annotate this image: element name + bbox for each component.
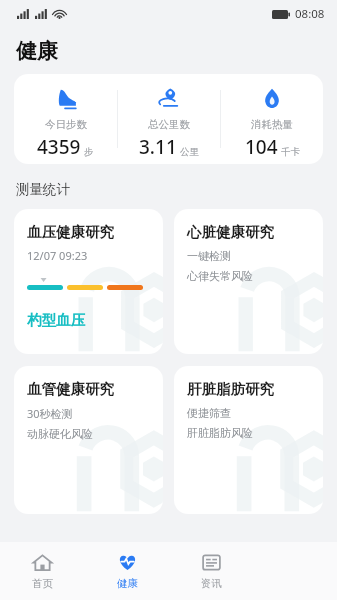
staticText: 3.11: [139, 134, 177, 160]
staticText: 便捷筛查: [187, 406, 231, 420]
other: 资讯: [201, 552, 222, 573]
staticText: 总公里数: [148, 118, 190, 131]
other: 首页: [32, 552, 53, 573]
button[interactable]: 资讯: [169, 542, 253, 600]
staticText: 今日步数: [45, 118, 87, 131]
staticText: 测量统计: [16, 181, 70, 198]
staticText: 心脏健康研究: [187, 223, 274, 241]
staticText: 一键检测: [187, 249, 231, 263]
button[interactable]: 健康: [85, 542, 169, 600]
button[interactable]: 首页: [0, 542, 85, 600]
staticText: 消耗热量: [251, 118, 293, 131]
staticText: 肝脏脂肪风险: [187, 426, 253, 440]
staticText: 肝脏脂肪研究: [187, 380, 274, 398]
staticText: 104: [245, 134, 278, 160]
staticText: 30秒检测: [27, 406, 73, 421]
staticText: 步: [84, 146, 94, 158]
staticText: 健康: [16, 38, 58, 64]
button[interactable]: 血管健康研究: [14, 366, 163, 514]
button[interactable]: 肝脏脂肪研究: [174, 366, 323, 514]
staticText: 公里: [180, 146, 199, 158]
staticText: 资讯: [201, 577, 222, 590]
staticText: 血管健康研究: [27, 380, 114, 398]
staticText: 首页: [32, 577, 53, 590]
staticText: 健康: [117, 577, 138, 590]
staticText: 杓型血压: [27, 311, 85, 329]
other: 健康: [117, 552, 138, 573]
button[interactable]: 心脏健康研究: [174, 209, 323, 354]
staticText: 12/07 09:23: [27, 248, 88, 263]
staticText: 心律失常风险: [187, 269, 253, 283]
button[interactable]: 今日步数: [14, 74, 323, 164]
button[interactable]: 血压健康研究: [14, 209, 163, 354]
staticText: 4359: [37, 134, 81, 160]
staticText: 08:08: [295, 6, 325, 22]
staticText: 动脉硬化风险: [27, 427, 93, 441]
staticText: 血压健康研究: [27, 223, 114, 241]
staticText: 千卡: [281, 146, 300, 158]
